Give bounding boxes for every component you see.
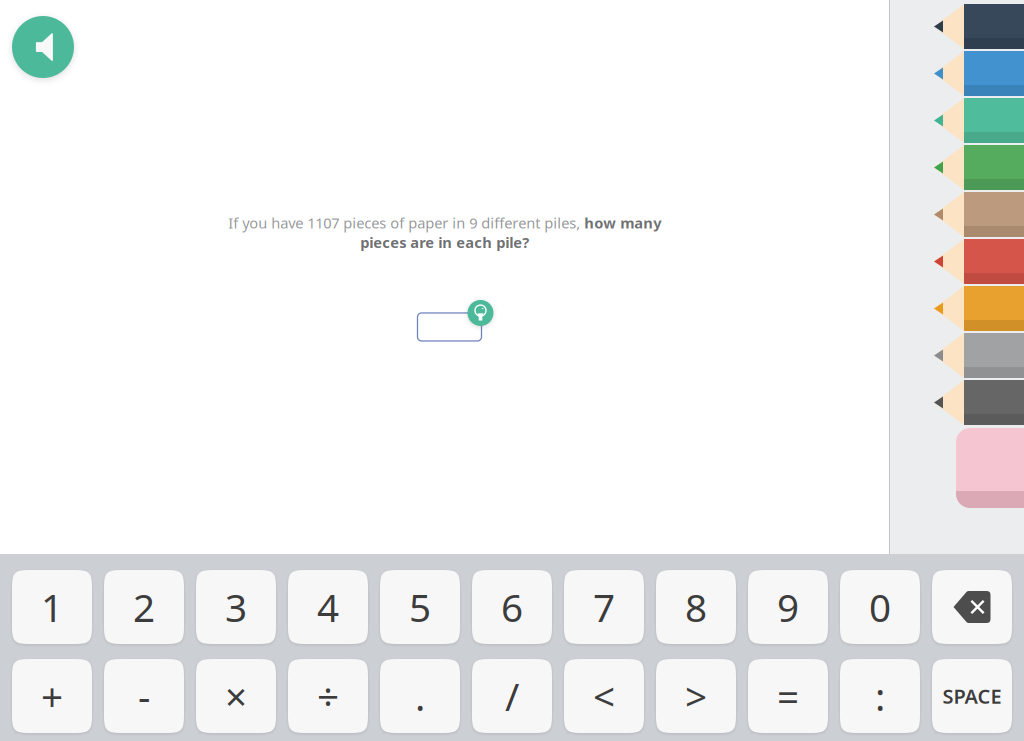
button[interactable]: - xyxy=(104,659,184,733)
button[interactable]: + xyxy=(12,659,92,733)
button[interactable]: 4 xyxy=(288,570,368,644)
button[interactable]: 5 xyxy=(380,570,460,644)
staticText: 0 xyxy=(869,581,891,633)
staticText: + xyxy=(41,670,63,722)
button[interactable]: Pencil colour xyxy=(894,380,1024,425)
button[interactable]: 8 xyxy=(656,570,736,644)
button[interactable]: Eraser xyxy=(942,428,1024,508)
button[interactable]: ÷ xyxy=(288,659,368,733)
staticText: . xyxy=(415,670,425,722)
button[interactable]: Read the question aloud xyxy=(12,16,74,78)
button[interactable]: . xyxy=(380,659,460,733)
button[interactable]: : xyxy=(840,659,920,733)
button[interactable]: Pencil colour xyxy=(894,98,1024,143)
staticText: 2 xyxy=(133,581,155,633)
button[interactable]: 0 xyxy=(840,570,920,644)
button[interactable]: 6 xyxy=(472,570,552,644)
staticText: 4 xyxy=(317,581,339,633)
staticText: < xyxy=(593,670,615,722)
button[interactable]: Pencil colour xyxy=(894,51,1024,96)
staticText: ÷ xyxy=(317,670,339,722)
button[interactable]: Pencil colour xyxy=(894,333,1024,378)
button[interactable]: Pencil colour xyxy=(894,286,1024,331)
staticText: 1 xyxy=(41,581,63,633)
button[interactable]: 9 xyxy=(748,570,828,644)
button[interactable]: Delete xyxy=(932,570,1012,644)
staticText: 9 xyxy=(777,581,799,633)
button[interactable]: = xyxy=(748,659,828,733)
staticText: 5 xyxy=(409,581,431,633)
button[interactable]: Pencil colour xyxy=(894,192,1024,237)
button[interactable]: Pencil colour xyxy=(894,145,1024,190)
button[interactable]: Pencil colour xyxy=(894,239,1024,284)
button[interactable]: 7 xyxy=(564,570,644,644)
staticText: > xyxy=(685,670,707,722)
button[interactable]: 1 xyxy=(12,570,92,644)
button[interactable]: SPACE xyxy=(932,659,1012,733)
staticText: 7 xyxy=(593,581,615,633)
staticText: = xyxy=(777,670,799,722)
button[interactable]: Hint xyxy=(467,300,493,326)
button[interactable]: 3 xyxy=(196,570,276,644)
staticText: 3 xyxy=(225,581,247,633)
button[interactable]: × xyxy=(196,659,276,733)
staticText: - xyxy=(138,670,150,722)
staticText: × xyxy=(225,670,247,722)
button[interactable]: < xyxy=(564,659,644,733)
button[interactable]: 2 xyxy=(104,570,184,644)
button[interactable]: / xyxy=(472,659,552,733)
staticText: 8 xyxy=(685,581,707,633)
staticText: : xyxy=(875,670,885,722)
staticText: 6 xyxy=(501,581,523,633)
staticText: SPACE xyxy=(942,683,1001,709)
button[interactable]: > xyxy=(656,659,736,733)
button[interactable]: Pencil colour xyxy=(894,4,1024,49)
staticText: / xyxy=(505,670,519,722)
staticText: If you have 1107 pieces of paper in 9 di… xyxy=(228,213,661,252)
